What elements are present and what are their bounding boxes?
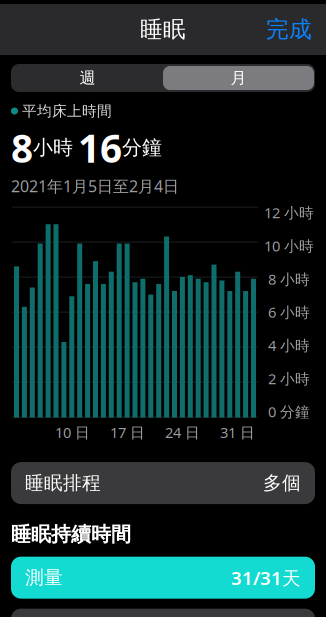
button[interactable]: 測量 [11,557,315,599]
staticText: 分鐘 [122,135,162,160]
staticText: 測量 [25,566,63,589]
staticText: 4 小時 [268,335,310,355]
button[interactable]: 睡眠排程 [11,462,315,504]
button[interactable]: 週 [12,66,163,90]
staticText: 6 小時 [268,302,310,322]
staticText: 2021年1月5日至2月4日 [11,175,179,197]
staticText: 週 [79,68,95,88]
staticText: 0 分鐘 [268,402,310,421]
staticText: 31 日 [220,423,255,442]
staticText: 平均床上時間 [22,102,112,120]
button[interactable]: 完成 [252,8,326,51]
staticText: 睡眠排程 [25,472,101,494]
staticText: 8 [11,122,33,173]
staticText: 睡眠 [140,16,186,43]
staticText: 月 [230,68,246,88]
staticText: 10 小時 [264,236,314,255]
staticText: 完成 [266,16,312,43]
staticText: 8 小時 [268,269,310,289]
button[interactable]: 睡眠目標 [11,609,315,617]
staticText: 小時 [33,135,73,160]
staticText: 多個 [263,472,301,494]
staticText: 睡眠持續時間 [11,522,131,547]
staticText: 17 日 [110,423,145,442]
staticText: 31/31天 [231,565,301,590]
staticText: 10 日 [55,423,90,442]
staticText: 16 [78,122,122,173]
staticText: 2 小時 [268,369,310,388]
staticText: 24 日 [165,423,200,442]
button[interactable]: 月 [163,66,314,90]
staticText: 12 小時 [264,203,314,222]
